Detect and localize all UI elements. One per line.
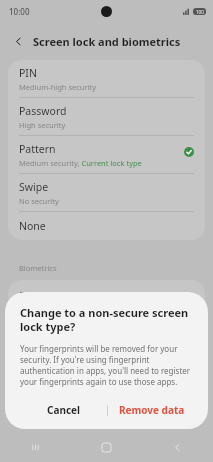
staticText: No security <box>19 196 59 206</box>
button[interactable]: Pattern <box>8 136 205 173</box>
button[interactable]: Back <box>7 30 29 52</box>
button[interactable]: Password <box>8 98 205 135</box>
staticText: Pattern <box>19 142 56 156</box>
staticText: Cancel <box>47 403 81 417</box>
button[interactable]: Home <box>71 432 142 462</box>
button[interactable]: Swipe <box>8 174 205 211</box>
staticText: 100 <box>196 9 204 15</box>
staticText: Password <box>19 104 67 118</box>
staticText: None <box>19 219 46 233</box>
staticText: Medium-high security <box>19 82 97 92</box>
staticText: Change to a non-secure screen lock type? <box>20 305 195 334</box>
staticText: Screen lock and biometrics <box>33 34 181 49</box>
staticText: Remove data <box>119 403 185 417</box>
staticText: PIN <box>19 66 37 80</box>
staticText: Swipe <box>19 180 49 194</box>
staticText: Face recognition <box>19 289 101 303</box>
staticText: Biometrics <box>19 263 57 273</box>
staticText: Your fingerprints will be removed for yo… <box>20 343 195 387</box>
staticText: Fingerprints <box>19 322 80 336</box>
button[interactable]: Face recognition <box>8 280 205 312</box>
button[interactable]: Fingerprints <box>8 313 205 345</box>
button[interactable]: None <box>8 212 205 240</box>
button[interactable]: PIN <box>8 60 205 97</box>
button[interactable]: Cancel <box>20 399 107 421</box>
button[interactable]: Remove data <box>108 399 195 421</box>
staticText: Medium security, Current lock type <box>19 158 142 168</box>
staticText: 10:00 <box>9 6 30 17</box>
staticText: High security <box>19 120 66 130</box>
